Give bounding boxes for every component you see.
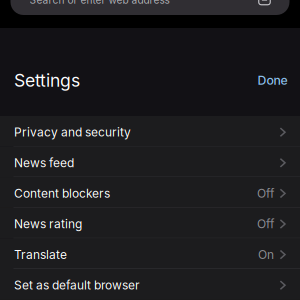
staticText: News feed <box>14 155 74 170</box>
staticText: Settings <box>14 70 80 91</box>
staticText: Search or enter web address <box>29 0 169 6</box>
staticText: Done <box>257 73 287 88</box>
staticText: Translate <box>14 247 67 262</box>
button[interactable]: Done <box>257 73 287 88</box>
button[interactable]: News rating <box>0 208 300 238</box>
staticText: Privacy and security <box>14 125 131 139</box>
button[interactable]: News feed <box>0 147 300 177</box>
staticText: Off <box>257 186 274 201</box>
staticText: News rating <box>14 217 82 231</box>
button[interactable]: Translate <box>0 238 300 269</box>
staticText: On <box>258 247 274 262</box>
staticText: Content blockers <box>14 186 110 201</box>
staticText: Set as default browser <box>14 278 140 292</box>
button[interactable]: Privacy and security <box>0 116 300 147</box>
button[interactable]: Set as default browser <box>0 269 300 300</box>
button[interactable]: Content blockers <box>0 177 300 208</box>
staticText: Off <box>257 217 274 231</box>
